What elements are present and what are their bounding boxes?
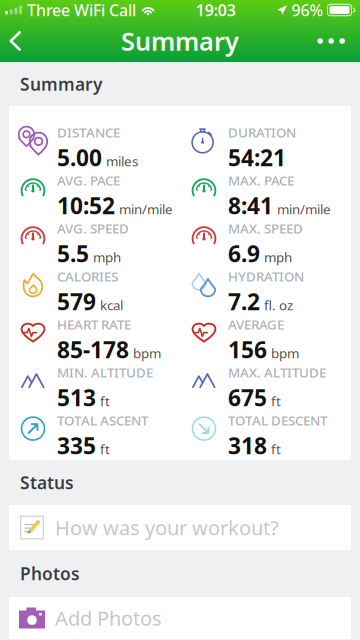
staticText: MAX. ALTITUDE bbox=[228, 364, 326, 381]
staticText: AVG. PACE bbox=[57, 172, 120, 189]
staticText: Three WiFi Call bbox=[27, 0, 136, 21]
staticText: 579 bbox=[57, 286, 96, 316]
staticText: bpm bbox=[271, 344, 299, 362]
staticText: ft bbox=[100, 392, 110, 410]
staticText: AVERAGE bbox=[228, 316, 284, 333]
staticText: MIN. ALTITUDE bbox=[57, 364, 153, 381]
staticText: 7.2 bbox=[228, 286, 260, 316]
staticText: ft bbox=[271, 440, 281, 458]
staticText: TOTAL ASCENT bbox=[57, 412, 148, 429]
staticText: HEART RATE bbox=[57, 316, 131, 333]
staticText: How was your workout? bbox=[55, 514, 279, 541]
staticText: mph bbox=[264, 248, 292, 266]
staticText: 54:21 bbox=[228, 142, 286, 172]
button[interactable]: More options bbox=[300, 20, 360, 62]
staticText: min/mile bbox=[277, 200, 331, 218]
staticText: 513 bbox=[57, 382, 96, 412]
staticText: mph bbox=[93, 248, 121, 266]
staticText: 6.9 bbox=[228, 238, 260, 268]
staticText: miles bbox=[106, 152, 138, 170]
staticText: MAX. PACE bbox=[228, 172, 294, 189]
button[interactable]: How was your workout? bbox=[9, 505, 351, 550]
staticText: 335 bbox=[57, 430, 96, 460]
button[interactable]: Add Photos bbox=[9, 597, 351, 639]
staticText: 19:03 bbox=[196, 0, 236, 21]
staticText: Photos bbox=[20, 562, 80, 585]
staticText: DURATION bbox=[228, 124, 296, 141]
staticText: Summary bbox=[121, 24, 239, 58]
staticText: 96% bbox=[291, 0, 323, 21]
staticText: TOTAL DESCENT bbox=[228, 412, 327, 429]
staticText: 10:52 bbox=[57, 190, 115, 220]
staticText: AVG. SPEED bbox=[57, 220, 129, 237]
staticText: ft bbox=[271, 392, 281, 410]
staticText: 5.5 bbox=[57, 238, 89, 268]
staticText: 8:41 bbox=[228, 190, 273, 220]
staticText: 85-178 bbox=[57, 334, 129, 364]
staticText: fl. oz bbox=[264, 296, 293, 314]
staticText: kcal bbox=[100, 296, 123, 314]
staticText: MAX. SPEED bbox=[228, 220, 303, 237]
staticText: 156 bbox=[228, 334, 267, 364]
staticText: ft bbox=[100, 440, 110, 458]
staticText: HYDRATION bbox=[228, 268, 304, 285]
staticText: 675 bbox=[228, 382, 267, 412]
staticText: min/mile bbox=[119, 200, 173, 218]
staticText: Summary bbox=[20, 72, 102, 95]
staticText: CALORIES bbox=[57, 268, 118, 285]
staticText: Status bbox=[20, 471, 74, 494]
staticText: DISTANCE bbox=[57, 124, 120, 141]
button[interactable]: Back bbox=[0, 20, 60, 62]
staticText: bpm bbox=[133, 344, 161, 362]
staticText: 5.00 bbox=[57, 142, 102, 172]
staticText: Add Photos bbox=[55, 605, 162, 631]
staticText: 318 bbox=[228, 430, 267, 460]
